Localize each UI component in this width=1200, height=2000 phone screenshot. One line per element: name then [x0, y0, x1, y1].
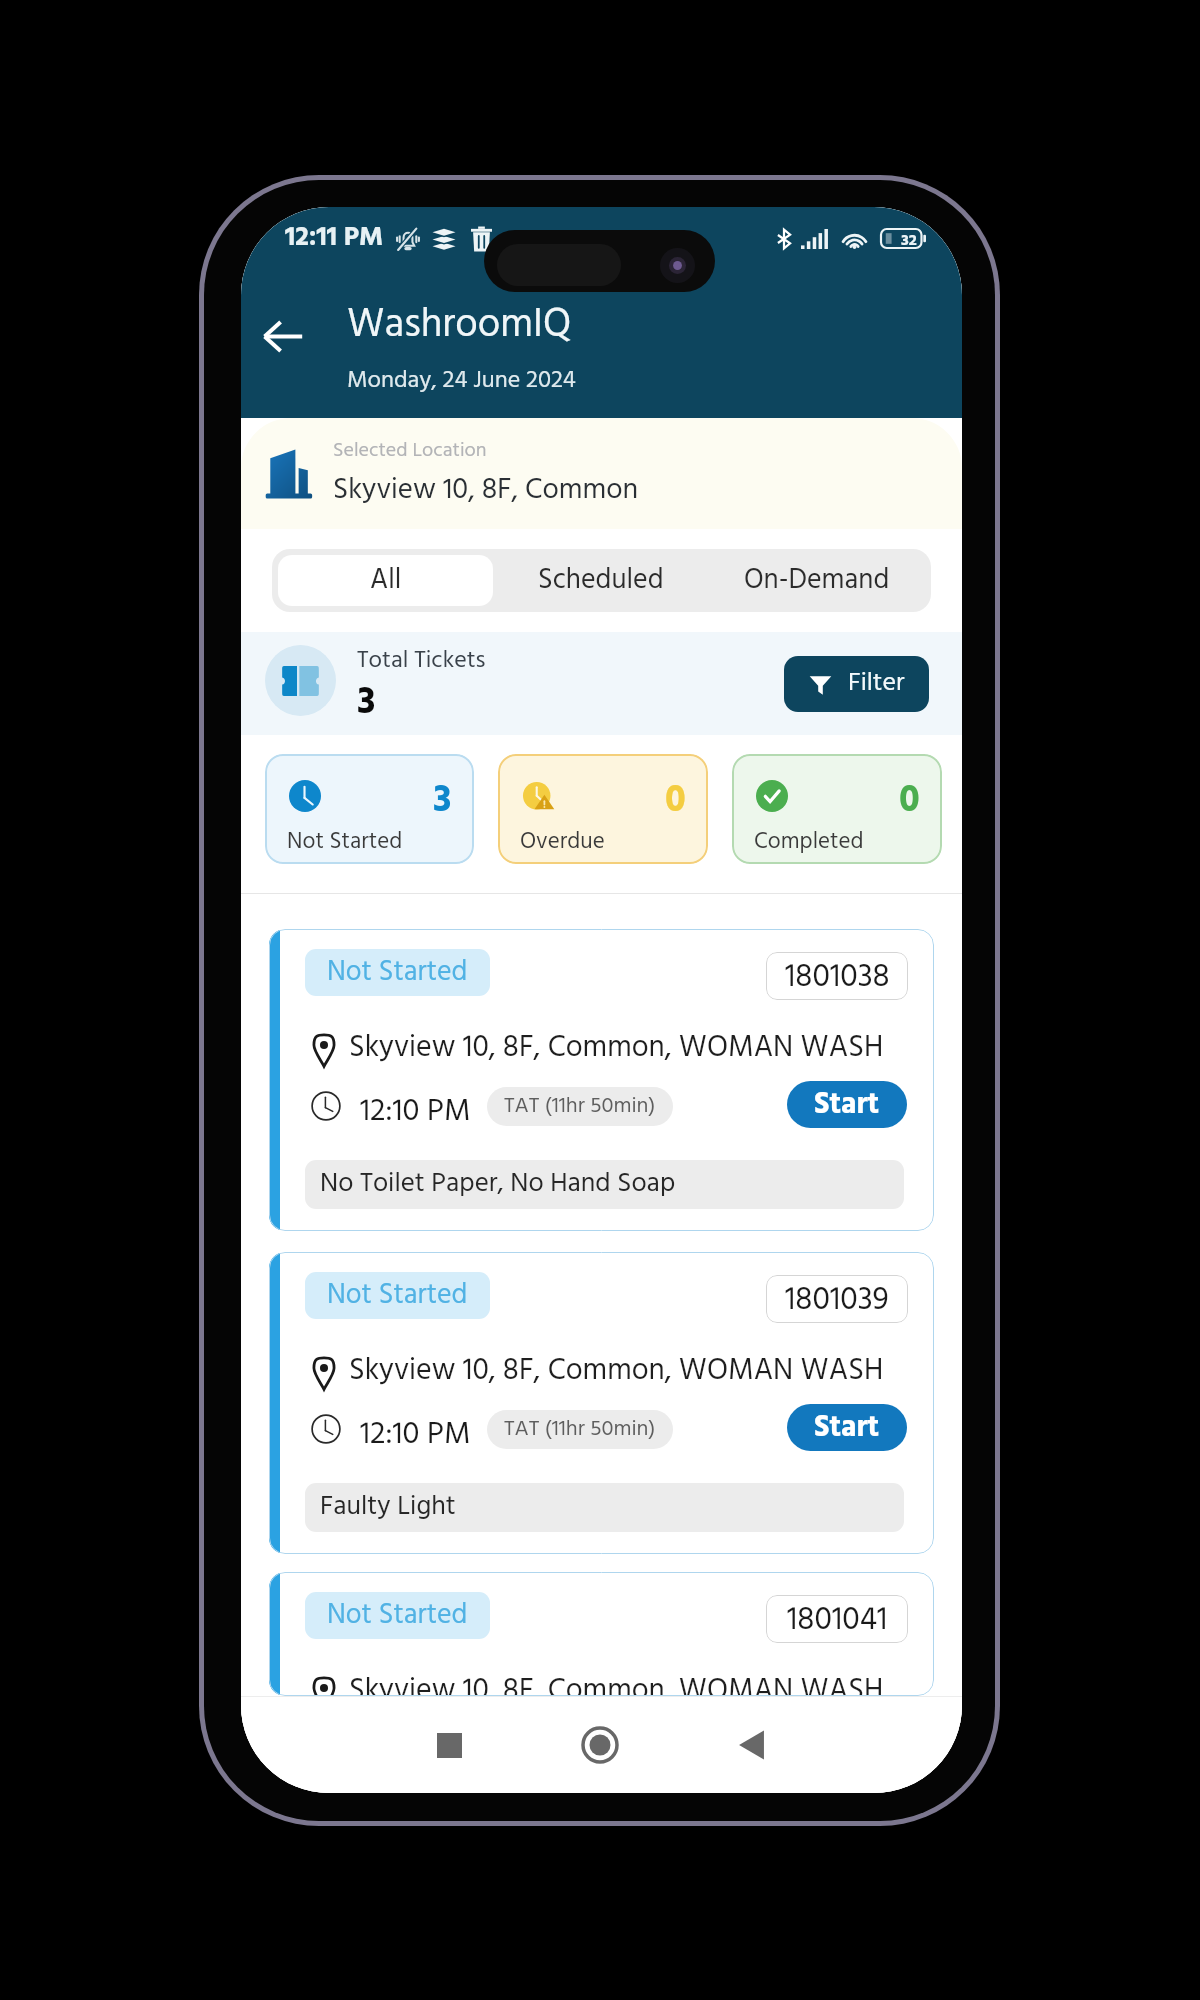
staticText: Skyview 10, 8F, Common, WOMAN WASH [349, 1347, 884, 1395]
staticText: All [370, 558, 402, 603]
staticText: WashroomIQ [347, 294, 572, 358]
button[interactable]: Not Started [269, 1252, 934, 1554]
staticText: 1801039 [785, 1275, 889, 1323]
staticText: Skyview 10, 8F, Common [333, 467, 639, 513]
button[interactable]: Back [723, 1717, 779, 1773]
staticText: Completed [754, 824, 864, 861]
staticText: Not Started [327, 950, 468, 995]
staticText: 12:11 PM [285, 217, 384, 260]
staticText: TAT (11hr 50min) [504, 1412, 656, 1447]
staticText: Start [814, 1404, 880, 1451]
staticText: On-Demand [744, 558, 890, 603]
staticText: Faulty Light [320, 1486, 456, 1529]
staticText: 1801041 [787, 1595, 888, 1643]
button[interactable]: Not Started [269, 929, 934, 1231]
button[interactable]: Back [254, 307, 312, 365]
staticText: Not Started [287, 824, 403, 861]
button[interactable]: On-Demand [709, 555, 925, 606]
button[interactable]: Not Started [305, 1272, 490, 1319]
staticText: No Toilet Paper, No Hand Soap [320, 1163, 676, 1206]
button[interactable]: Recents [421, 1717, 477, 1773]
button[interactable]: Start [787, 1404, 907, 1451]
button[interactable]: 0 [732, 754, 942, 864]
staticText: 1801038 [785, 952, 890, 1000]
staticText: Filter [848, 663, 905, 705]
staticText: Overdue [520, 824, 605, 861]
staticText: Not Started [327, 1273, 468, 1318]
staticText: Total Tickets [357, 642, 486, 680]
staticText: 12:10 PM [360, 1087, 471, 1137]
staticText: 32 [901, 228, 917, 247]
staticText: 0 [899, 771, 920, 832]
button[interactable]: Home [572, 1717, 628, 1773]
staticText: Selected Location [333, 435, 487, 467]
staticText: Skyview 10, 8F, Common, WOMAN WASH [349, 1024, 884, 1072]
staticText: TAT (11hr 50min) [504, 1089, 656, 1124]
button[interactable]: Start [787, 1081, 907, 1128]
staticText: 3 [357, 673, 376, 734]
button[interactable]: All [278, 555, 493, 606]
staticText: 0 [665, 771, 686, 832]
staticText: Not Started [327, 1593, 468, 1638]
staticText: 3 [433, 771, 452, 832]
staticText: Start [814, 1081, 880, 1128]
button[interactable]: Scheduled [493, 555, 709, 606]
button[interactable]: Filter [784, 656, 929, 712]
button[interactable]: 0 [498, 754, 708, 864]
staticText: Scheduled [538, 558, 664, 603]
button[interactable]: 3 [265, 754, 474, 864]
button[interactable]: Not Started [305, 949, 490, 996]
button[interactable]: Not Started [305, 1592, 490, 1639]
staticText: Monday, 24 June 2024 [347, 362, 576, 400]
button[interactable]: Selected Location [241, 418, 962, 529]
button[interactable]: Not Started [269, 1572, 934, 1696]
staticText: Skyview 10, 8F, Common, WOMAN WASH [349, 1667, 884, 1696]
staticText: 12:10 PM [360, 1410, 471, 1460]
